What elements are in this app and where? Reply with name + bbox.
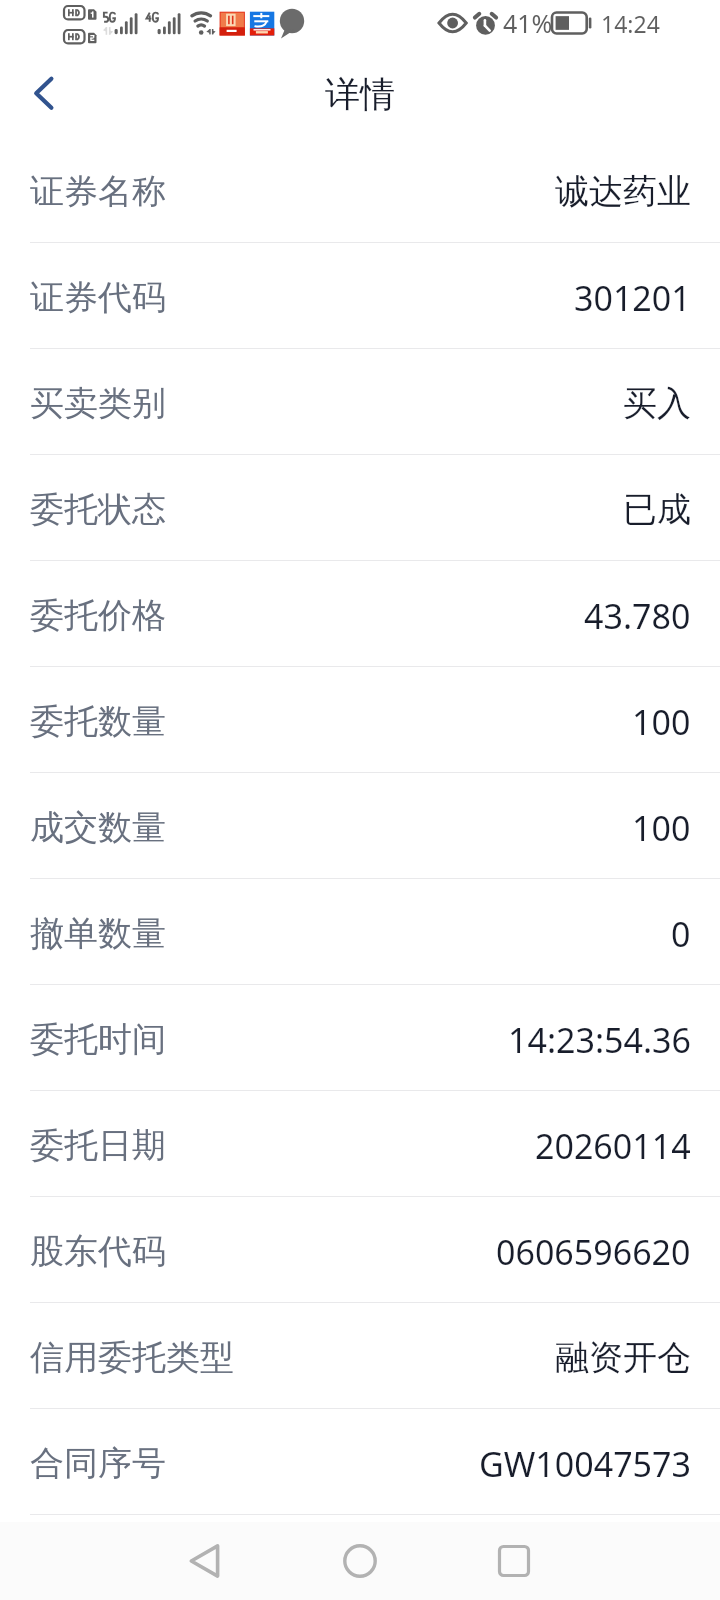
staticText: 委托价格 bbox=[30, 594, 166, 637]
staticText: 信用委托类型 bbox=[30, 1336, 234, 1379]
staticText: 14:24 bbox=[601, 8, 660, 39]
staticText: 成交数量 bbox=[30, 806, 166, 849]
staticText: 委托时间 bbox=[30, 1018, 166, 1061]
button[interactable]: 证券代码 bbox=[0, 243, 720, 348]
staticText: 撤单数量 bbox=[30, 912, 166, 955]
staticText: 证券代码 bbox=[30, 276, 166, 319]
staticText: 委托日期 bbox=[30, 1124, 166, 1167]
button[interactable]: 证券名称 bbox=[0, 137, 720, 242]
staticText: 0 bbox=[671, 911, 691, 957]
staticText: 诚达药业 bbox=[555, 170, 691, 213]
button[interactable]: Back bbox=[167, 1523, 243, 1599]
staticText: 41% bbox=[503, 6, 553, 40]
staticText: 委托状态 bbox=[30, 488, 166, 531]
staticText: 证券名称 bbox=[30, 170, 166, 213]
button[interactable]: 买卖类别 bbox=[0, 349, 720, 454]
button[interactable]: 委托时间 bbox=[0, 985, 720, 1090]
button[interactable]: Home bbox=[322, 1523, 398, 1599]
staticText: 已成 bbox=[623, 488, 691, 531]
staticText: 委托数量 bbox=[30, 700, 166, 743]
staticText: 股东代码 bbox=[30, 1230, 166, 1273]
button[interactable]: Recent apps bbox=[476, 1523, 552, 1599]
staticText: 合同序号 bbox=[30, 1442, 166, 1485]
staticText: 详情 bbox=[325, 72, 395, 116]
button[interactable]: 股东代码 bbox=[0, 1197, 720, 1302]
staticText: 14:23:54.36 bbox=[508, 1017, 691, 1063]
staticText: 20260114 bbox=[535, 1123, 691, 1169]
button[interactable]: 信用委托类型 bbox=[0, 1303, 720, 1408]
button[interactable]: 委托价格 bbox=[0, 561, 720, 666]
staticText: 买入 bbox=[623, 382, 691, 425]
staticText: 融资开仓 bbox=[555, 1336, 691, 1379]
staticText: 买卖类别 bbox=[30, 382, 166, 425]
button[interactable]: 成交数量 bbox=[0, 773, 720, 878]
staticText: 43.780 bbox=[584, 593, 691, 639]
button[interactable]: Back bbox=[14, 62, 78, 126]
staticText: 100 bbox=[632, 805, 691, 851]
staticText: 0606596620 bbox=[496, 1229, 691, 1275]
button[interactable]: 委托状态 bbox=[0, 455, 720, 560]
button[interactable]: 撤单数量 bbox=[0, 879, 720, 984]
button[interactable]: 委托日期 bbox=[0, 1091, 720, 1196]
button[interactable]: 委托数量 bbox=[0, 667, 720, 772]
staticText: 301201 bbox=[574, 275, 691, 321]
button[interactable]: 合同序号 bbox=[0, 1409, 720, 1514]
staticText: GW10047573 bbox=[479, 1441, 691, 1487]
staticText: 100 bbox=[632, 699, 691, 745]
